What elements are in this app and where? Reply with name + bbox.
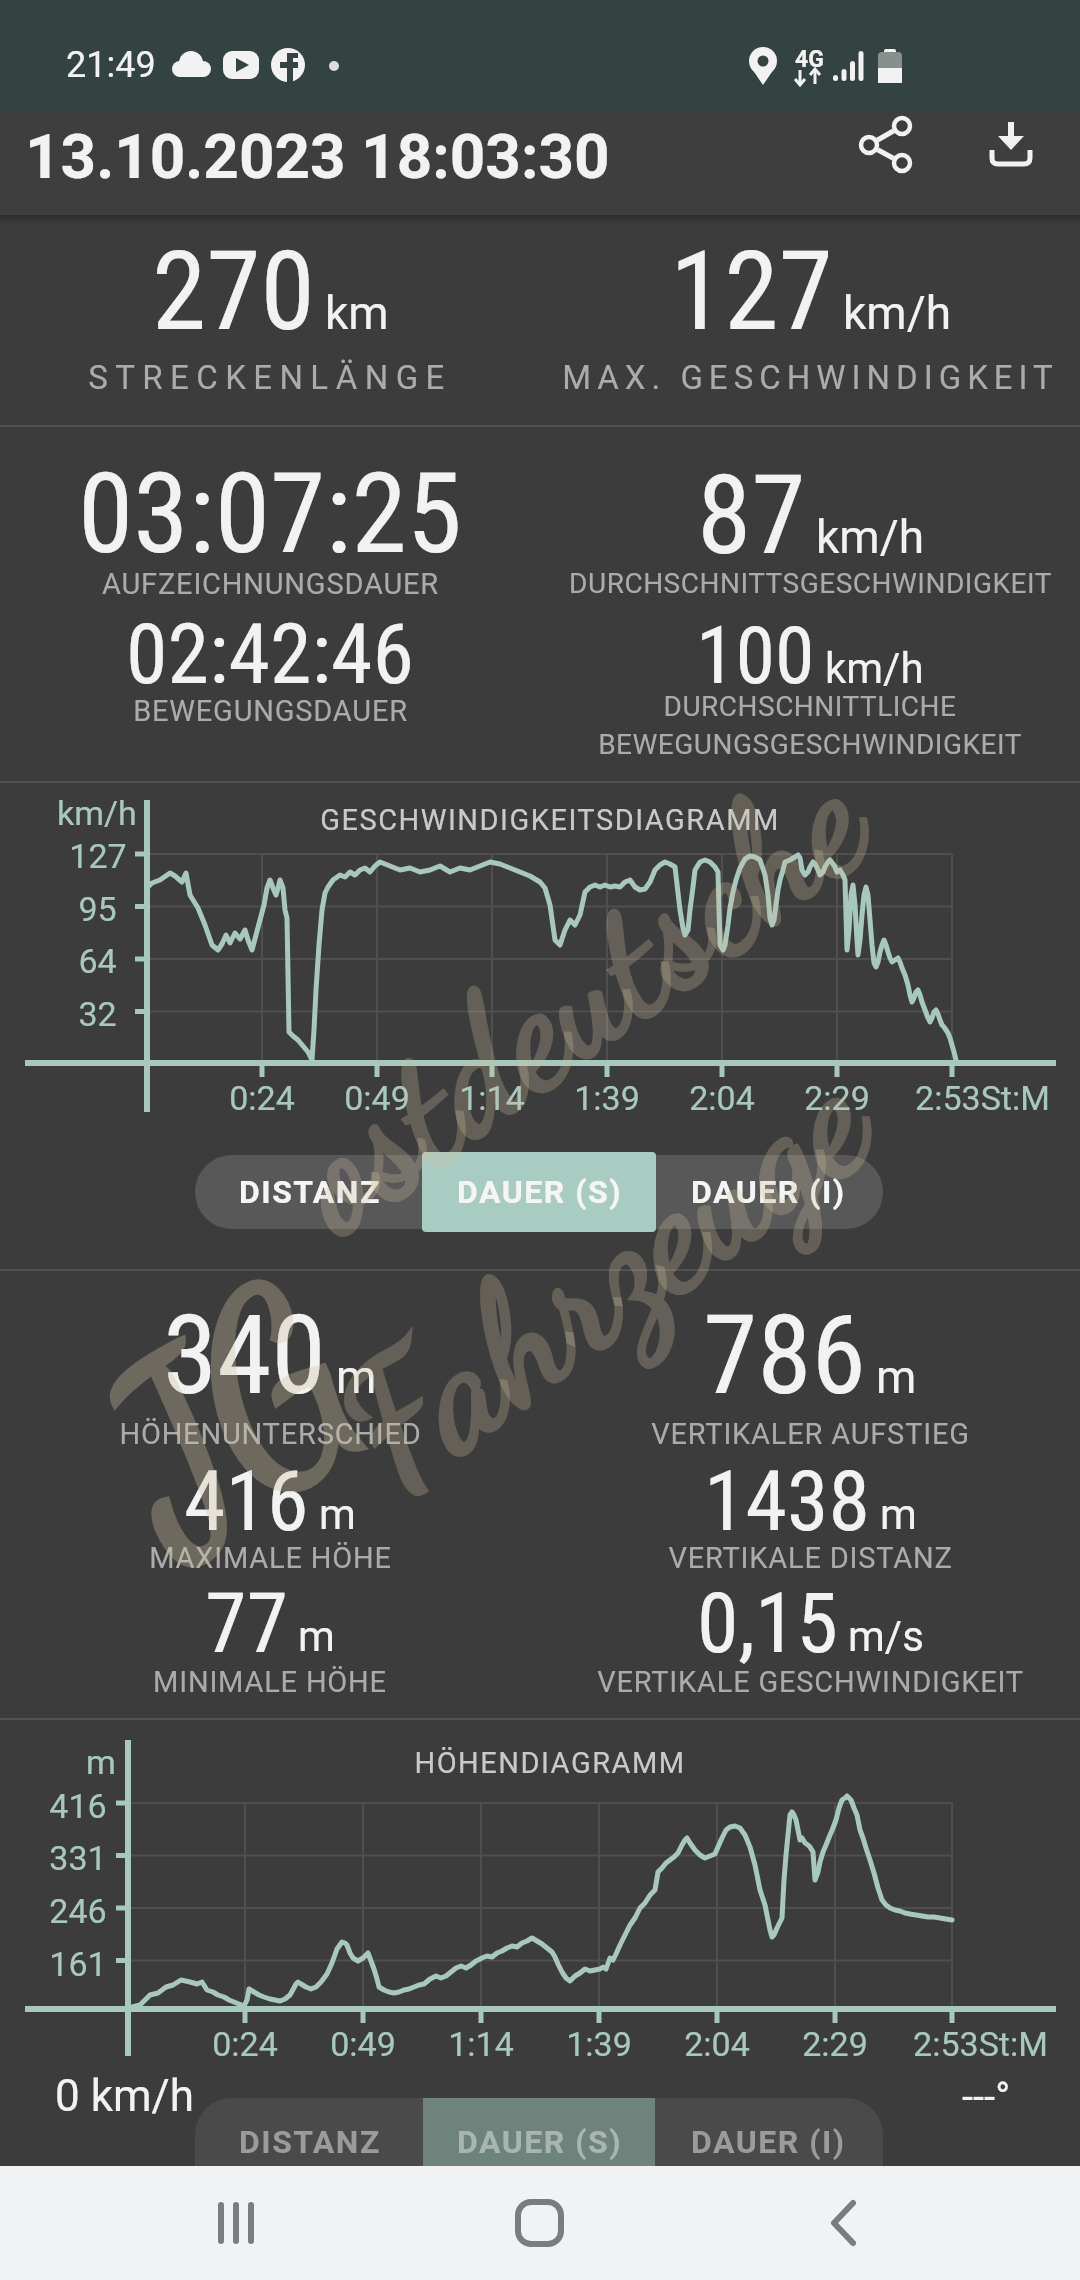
staticText: JG [49, 1232, 412, 1608]
button[interactable] [966, 112, 1058, 215]
staticText: 416 [184, 1452, 309, 1550]
staticText: MAXIMALE HÖHE [149, 1541, 392, 1575]
staticText: DAUER (S) [457, 1173, 622, 1211]
staticText: DURCHSCHNITTLICHE BEWEGUNGSGESCHWINDIGKE… [598, 690, 1022, 761]
staticText: 95 [78, 889, 117, 929]
staticText: DAUER (I) [691, 1173, 846, 1211]
staticText: 2:29 [802, 2024, 868, 2064]
staticText: MINIMALE HÖHE [153, 1665, 387, 1699]
staticText: BEWEGUNGSDAUER [133, 694, 408, 728]
staticText: 246 [49, 1891, 107, 1931]
button[interactable]: DAUER (I) [654, 2112, 883, 2166]
staticText: km/h [57, 793, 137, 833]
staticText: 340 [163, 1291, 326, 1420]
staticText: 161 [49, 1944, 107, 1984]
staticText: 0,15 [697, 1574, 838, 1672]
staticText: VERTIKALE GESCHWINDIGKEIT [597, 1665, 1024, 1699]
staticText: m [876, 1350, 917, 1404]
staticText: 416 [49, 1786, 107, 1826]
staticText: 1:14 [448, 2024, 514, 2064]
staticText: Fahrzeuge [304, 1017, 907, 1533]
staticText: VERTIKALE DISTANZ [668, 1541, 953, 1575]
staticText: 03:07:25 [78, 448, 463, 579]
button[interactable]: DAUER (S) [424, 2112, 654, 2166]
staticText: m [880, 1490, 917, 1539]
staticText: 2:53St:M [913, 2024, 1048, 2064]
staticText: HÖHENDIAGRAMM [414, 1746, 686, 1780]
staticText: 0 km/h [55, 2070, 194, 2122]
staticText: 0:24 [212, 2024, 278, 2064]
staticText: 2:53St:M [915, 1078, 1050, 1118]
staticText: 127 [670, 227, 833, 356]
staticText: DAUER (S) [457, 2123, 622, 2161]
staticText: 331 [49, 1838, 107, 1878]
staticText: MAX. GESCHWINDIGKEIT [562, 358, 1059, 397]
staticText: 64 [78, 941, 117, 981]
staticText: km/h [816, 510, 924, 564]
staticText: 32 [78, 994, 117, 1034]
staticText: 4G [795, 46, 824, 73]
staticText: km/h [825, 644, 924, 693]
staticText: AUFZEICHNUNGSDAUER [102, 567, 439, 601]
staticText: 1:14 [459, 1078, 525, 1118]
button[interactable]: DISTANZ [195, 2112, 424, 2166]
staticText: 02:42:46 [126, 605, 415, 703]
staticText: 77 [205, 1574, 288, 1672]
staticText: 1:39 [574, 1078, 640, 1118]
staticText: 2:04 [689, 1078, 755, 1118]
button[interactable] [422, 1152, 656, 1232]
button[interactable]: DISTANZ [195, 1155, 424, 1229]
staticText: km [325, 286, 389, 340]
staticText: 0:24 [229, 1078, 295, 1118]
staticText: 0:49 [344, 1078, 410, 1118]
staticText: GESCHWINDIGKEITSDIAGRAMM [320, 803, 780, 837]
staticText: DISTANZ [239, 1173, 381, 1211]
staticText: 2:04 [684, 2024, 750, 2064]
button[interactable] [177, 2166, 297, 2280]
staticText: ---° [962, 2074, 1011, 2121]
staticText: m/s [848, 1612, 924, 1661]
staticText: m [319, 1490, 356, 1539]
staticText: 786 [703, 1291, 866, 1420]
button[interactable] [784, 2166, 904, 2280]
staticText: 0:49 [330, 2024, 396, 2064]
staticText: 87 [697, 451, 806, 580]
staticText: m [336, 1350, 377, 1404]
button[interactable] [856, 112, 948, 215]
staticText: DURCHSCHNITTSGESCHWINDIGKEIT [569, 567, 1052, 600]
staticText: DAUER (I) [691, 2123, 846, 2161]
staticText: STRECKENLÄNGE [88, 358, 452, 397]
staticText: 2:29 [804, 1078, 870, 1118]
staticText: 21:49 [66, 44, 156, 86]
button[interactable] [480, 2166, 600, 2280]
staticText: ostdeutsche [248, 719, 903, 1271]
staticText: 127 [69, 836, 127, 876]
staticText: DISTANZ [239, 2123, 381, 2161]
staticText: 1438 [704, 1452, 870, 1550]
staticText: 13.10.2023 18:03:30 [25, 120, 610, 193]
staticText: VERTIKALER AUFSTIEG [651, 1417, 970, 1451]
staticText: HÖHENUNTERSCHIED [119, 1417, 422, 1451]
button[interactable]: DAUER (I) [654, 1155, 883, 1229]
staticText: 1:39 [566, 2024, 632, 2064]
staticText: 270 [152, 227, 315, 356]
staticText: m [298, 1612, 335, 1661]
staticText: m [86, 1742, 116, 1782]
staticText: 100 [696, 609, 815, 703]
staticText: km/h [843, 286, 951, 340]
